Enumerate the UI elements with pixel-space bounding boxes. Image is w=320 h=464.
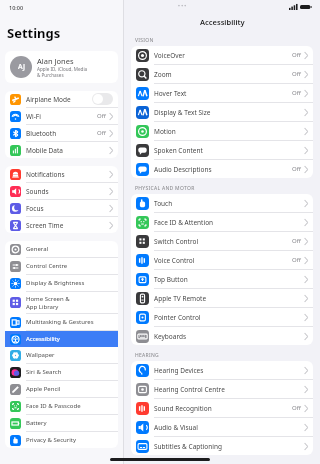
staticText: 10:00 — [9, 4, 24, 11]
staticText: Sound Recognition — [154, 404, 212, 413]
staticText: Bluetooth — [26, 129, 57, 138]
staticText: Apple Pencil — [26, 385, 61, 393]
button[interactable]: Sound Recognition — [131, 399, 313, 417]
button[interactable]: Subtitles & Captioning — [131, 437, 313, 455]
staticText: Off — [97, 112, 106, 120]
staticText: Face ID & Attention — [154, 218, 214, 227]
staticText: Off — [97, 129, 106, 137]
button[interactable]: Sounds — [5, 183, 118, 199]
staticText: Off — [292, 165, 301, 173]
staticText: Off — [292, 89, 301, 97]
button[interactable]: Hearing Control Centre — [131, 380, 313, 398]
button[interactable]: Battery — [5, 415, 118, 431]
staticText: Top Button — [154, 275, 188, 284]
staticText: Face ID & Passcode — [26, 402, 81, 410]
button[interactable]: Touch — [131, 194, 313, 212]
button[interactable]: Privacy & Security — [5, 432, 118, 448]
staticText: Wi-Fi — [26, 112, 41, 121]
staticText: Apple TV Remote — [154, 294, 207, 303]
staticText: Display & Text Size — [154, 108, 211, 117]
button[interactable]: Switch Control — [131, 232, 313, 250]
staticText: Hearing Devices — [154, 366, 204, 375]
staticText: Off — [292, 70, 301, 78]
staticText: Off — [292, 237, 301, 245]
button[interactable]: Display & Brightness — [5, 275, 118, 291]
button[interactable]: Audio & Visual — [131, 418, 313, 436]
button[interactable]: Wallpaper — [5, 347, 118, 363]
staticText: Focus — [26, 204, 44, 213]
button[interactable]: Multitasking & Gestures — [5, 314, 118, 330]
staticText: Apple ID, iCloud, Media — [37, 66, 88, 72]
staticText: Zoom — [154, 70, 172, 79]
staticText: Privacy & Security — [26, 436, 77, 444]
staticText: Battery — [26, 419, 47, 427]
staticText: HEARING — [135, 352, 160, 359]
staticText: Touch — [154, 199, 173, 208]
staticText: Subtitles & Captioning — [154, 442, 222, 451]
button[interactable]: Face ID & Attention — [131, 213, 313, 231]
button[interactable]: Apple Pencil — [5, 381, 118, 397]
button[interactable]: Accessibility — [5, 331, 118, 347]
button[interactable]: Face ID & Passcode — [5, 398, 118, 414]
staticText: Hearing Control Centre — [154, 385, 225, 394]
staticText: AJ — [18, 62, 25, 72]
staticText: Off — [292, 256, 301, 264]
button[interactable]: AJ — [5, 51, 118, 83]
staticText: Wallpaper — [26, 351, 55, 359]
staticText: Off — [292, 51, 301, 59]
staticText: PHYSICAL AND MOTOR — [135, 185, 195, 192]
staticText: Screen Time — [26, 221, 64, 230]
button[interactable]: Motion — [131, 122, 313, 140]
staticText: Control Centre — [26, 262, 68, 270]
button[interactable]: Wi-Fi — [5, 108, 118, 124]
button[interactable]: Display & Text Size — [131, 103, 313, 121]
button[interactable]: Pointer Control — [131, 308, 313, 326]
staticText: Accessibility — [200, 17, 245, 27]
button[interactable]: Spoken Content — [131, 141, 313, 159]
staticText: Voice Control — [154, 256, 195, 265]
staticText: Multitasking & Gestures — [26, 318, 94, 326]
staticText: Sounds — [26, 187, 49, 196]
button[interactable]: Control Centre — [5, 258, 118, 274]
button[interactable]: General — [5, 241, 118, 257]
staticText: App Library — [26, 303, 59, 311]
staticText: General — [26, 245, 49, 253]
staticText: Accessibility — [26, 335, 60, 343]
staticText: Alan Jones — [37, 56, 74, 66]
button[interactable]: Airplane Mode — [5, 91, 118, 107]
button[interactable]: Top Button — [131, 270, 313, 288]
button[interactable]: Bluetooth — [5, 125, 118, 141]
button[interactable]: Home Screen & — [5, 292, 118, 313]
staticText: & Purchases — [37, 72, 64, 78]
button[interactable]: Voice Control — [131, 251, 313, 269]
staticText: Siri & Search — [26, 368, 62, 376]
button[interactable]: Apple TV Remote — [131, 289, 313, 307]
button[interactable]: Audio Descriptions — [131, 160, 313, 178]
button[interactable]: Siri & Search — [5, 364, 118, 380]
button[interactable]: Notifications — [5, 166, 118, 182]
button[interactable]: Mobile Data — [5, 142, 118, 158]
staticText: VISION — [135, 37, 154, 44]
staticText: Display & Brightness — [26, 279, 85, 287]
staticText: Audio & Visual — [154, 423, 198, 432]
button[interactable]: Hover Text — [131, 84, 313, 102]
staticText: Notifications — [26, 170, 65, 179]
staticText: Pointer Control — [154, 313, 201, 322]
staticText: Home Screen & — [26, 295, 70, 303]
staticText: VoiceOver — [154, 51, 185, 60]
staticText: Hover Text — [154, 89, 187, 98]
button[interactable]: Zoom — [131, 65, 313, 83]
button[interactable]: Hearing Devices — [131, 361, 313, 379]
button[interactable]: Keyboards — [131, 327, 313, 345]
staticText: Motion — [154, 127, 176, 136]
staticText: Mobile Data — [26, 146, 63, 155]
staticText: Spoken Content — [154, 146, 203, 155]
staticText: Keyboards — [154, 332, 187, 341]
staticText: Audio Descriptions — [154, 165, 212, 174]
button[interactable]: Screen Time — [5, 217, 118, 233]
button[interactable]: VoiceOver — [131, 46, 313, 64]
button[interactable]: Focus — [5, 200, 118, 216]
staticText: Airplane Mode — [26, 95, 71, 104]
staticText: Switch Control — [154, 237, 199, 246]
staticText: Off — [292, 404, 301, 412]
